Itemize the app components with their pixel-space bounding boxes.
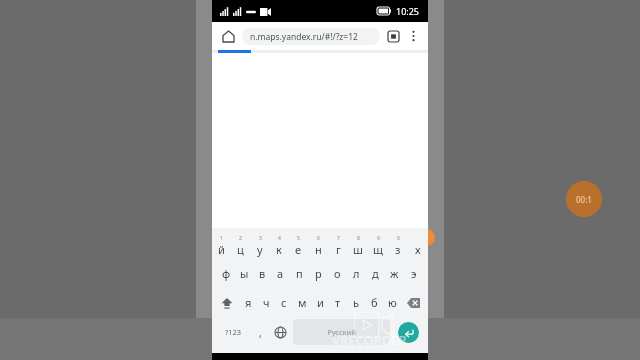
button[interactable]: 5 [288,232,308,259]
staticText: н [315,242,322,257]
button[interactable]: п [290,259,309,288]
button[interactable]: а [271,259,290,288]
button[interactable]: м [293,288,311,317]
staticText: Русский [327,327,356,337]
staticText: , [259,325,262,340]
button[interactable]: More options [404,27,422,45]
button[interactable]: ф [217,259,235,288]
staticText: VRECORDER [332,331,407,349]
staticText: з [395,242,401,257]
staticText: д [372,266,379,281]
button[interactable]: 2 [231,232,250,259]
staticText: ы [240,266,249,281]
staticText: ж [390,266,399,281]
staticText: 1 [220,235,223,242]
staticText: и [317,295,324,310]
staticText: ь [353,295,359,310]
button[interactable]: с [275,288,293,317]
button[interactable]: 1 [212,232,231,259]
staticText: ф [222,266,231,281]
button[interactable]: т [329,288,347,317]
staticText: й [218,242,225,257]
staticText: у [257,242,263,257]
button[interactable]: Change language [270,319,290,345]
staticText: 5 [297,235,300,242]
staticText: л [353,266,360,281]
staticText: 00:1 [576,194,592,205]
staticText: ю [388,295,397,310]
button[interactable]: ж [385,259,404,288]
button[interactable]: х [408,232,428,259]
button[interactable]: 8 [348,232,368,259]
button[interactable]: э [404,259,423,288]
staticText: к [276,242,282,257]
staticText: ?123 [225,327,242,337]
button[interactable]: в [253,259,271,288]
staticText: с [281,295,287,310]
button[interactable]: 6 [308,232,328,259]
button[interactable]: Русский [293,319,390,345]
button[interactable]: Enter [398,322,419,343]
staticText: 6 [317,235,320,242]
button[interactable]: ы [235,259,253,288]
staticText: п [296,266,303,281]
button[interactable]: д [366,259,385,288]
button[interactable]: n.maps.yandex.ru/#!/?z=12 [242,28,380,45]
staticText: э [411,266,417,281]
staticText: о [334,266,341,281]
button[interactable]: 4 [269,232,288,259]
button[interactable]: ?123 [216,319,250,345]
staticText: ш [353,242,363,257]
button[interactable]: и [311,288,329,317]
staticText: ч [263,295,270,310]
staticText: n.maps.yandex.ru/#!/?z=12 [250,31,358,43]
button[interactable]: 3 [250,232,269,259]
staticText: 7 [337,235,340,242]
button[interactable]: Delete [401,288,425,317]
button[interactable]: Shift [215,288,239,317]
staticText: в [259,266,266,281]
button[interactable]: , [250,319,270,345]
button[interactable]: я [239,288,257,317]
staticText: 8 [357,235,360,242]
button[interactable]: 7 [328,232,348,259]
button[interactable]: р [309,259,328,288]
staticText: 9 [377,235,380,242]
staticText: г [336,242,341,257]
staticText: р [315,266,322,281]
staticText: 0 [397,235,400,242]
button[interactable]: Cast [384,27,402,45]
button[interactable]: ю [383,288,401,317]
button[interactable]: ь [347,288,365,317]
staticText: а [277,266,284,281]
staticText: 10:25 [396,5,420,17]
button[interactable]: 9 [368,232,388,259]
button[interactable]: л [347,259,366,288]
staticText: щ [373,242,383,257]
button[interactable]: б [365,288,383,317]
staticText: 3 [259,235,262,242]
staticText: ц [237,242,244,257]
staticText: е [295,242,302,257]
staticText: т [335,295,341,310]
staticText: 4 [278,235,281,242]
staticText: м [298,295,307,310]
button[interactable]: 0 [388,232,408,259]
button[interactable]: Home [218,26,238,46]
button[interactable]: ч [257,288,275,317]
staticText: х [415,242,421,257]
staticText: 2 [239,235,242,242]
staticText: б [371,295,378,310]
staticText: я [245,295,252,310]
button[interactable]: о [328,259,347,288]
